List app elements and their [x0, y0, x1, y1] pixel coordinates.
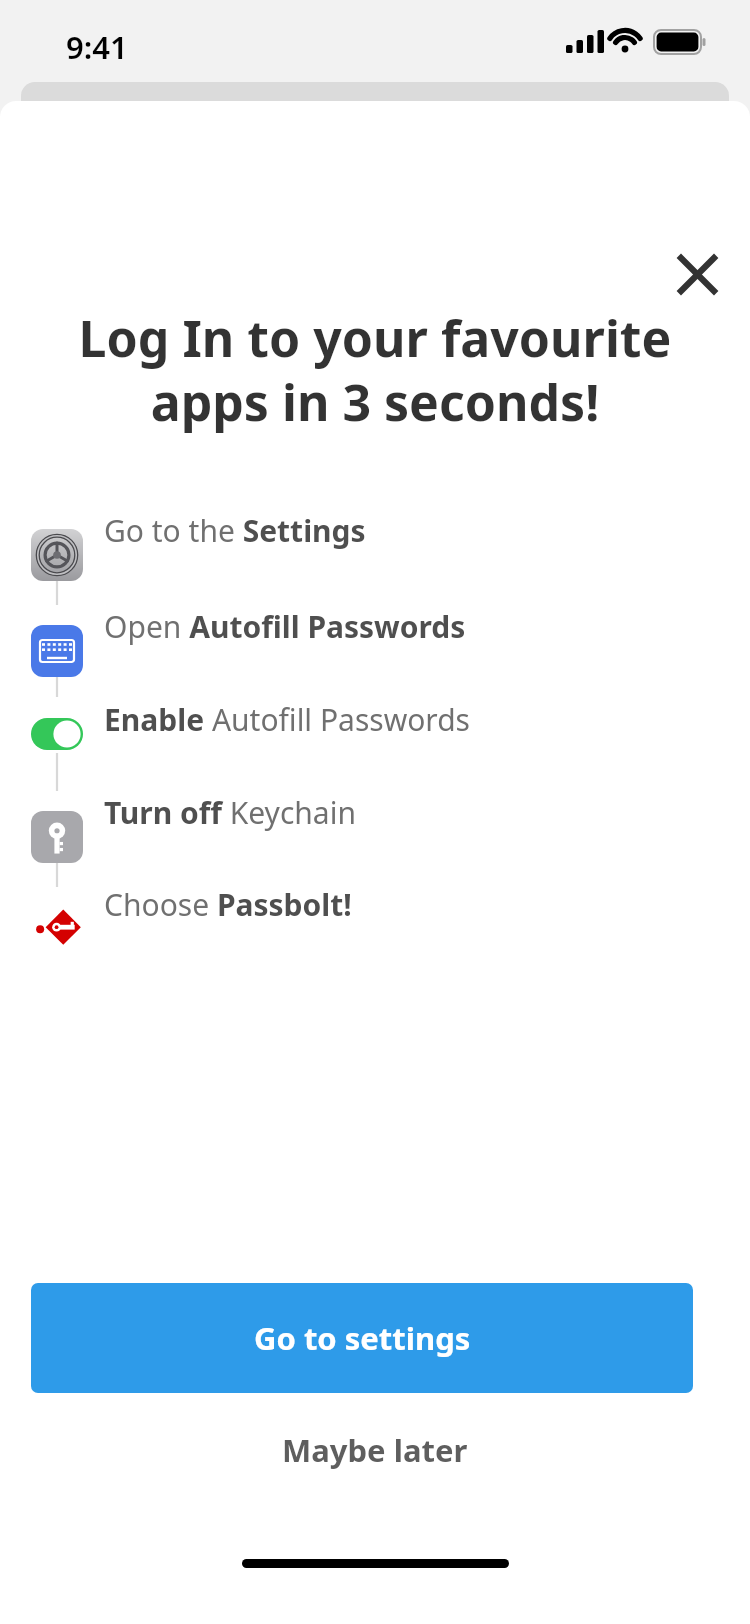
staticText: Go to settings [254, 1317, 471, 1359]
button[interactable]: Go to settings [31, 1283, 693, 1393]
other: Autofill Passwords icon [31, 625, 83, 677]
button[interactable]: Autofill Passwords icon [0, 576, 750, 669]
other: Keychain key icon [31, 811, 83, 863]
button[interactable]: Passbolt logo [0, 858, 750, 951]
staticText: Enable Autofill Passwords [104, 699, 470, 740]
other: Settings app icon [31, 529, 83, 581]
button[interactable]: Close [649, 226, 745, 322]
staticText: Maybe later [282, 1429, 468, 1471]
staticText: Open Autofill Passwords [104, 606, 466, 647]
button[interactable]: Maybe later [0, 1411, 750, 1489]
staticText: Choose Passbolt! [104, 884, 352, 925]
button[interactable]: Settings app icon [0, 483, 750, 576]
staticText: Go to the Settings [104, 510, 366, 551]
button[interactable]: Toggle switch on [0, 672, 750, 765]
staticText: Log In to your favourite apps in 3 secon… [38, 304, 712, 436]
button[interactable]: Keychain key icon [0, 765, 750, 858]
other: Toggle switch on [31, 718, 83, 750]
staticText: Turn off Keychain [104, 792, 356, 833]
staticText: 9:41 [66, 26, 128, 68]
other: Passbolt logo [31, 903, 83, 947]
